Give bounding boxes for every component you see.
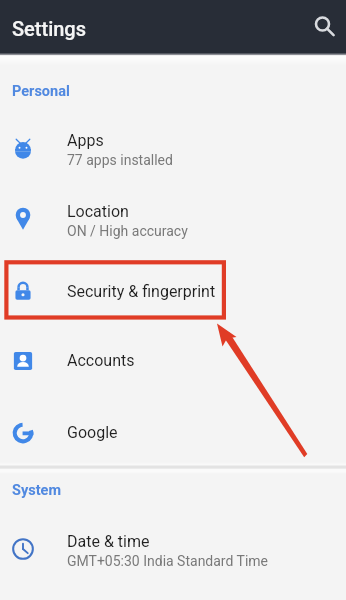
staticText: Location bbox=[67, 202, 129, 221]
staticText: Accounts bbox=[67, 351, 135, 370]
staticText: Apps bbox=[67, 131, 104, 150]
staticText: GMT+05:30 India Standard Time bbox=[67, 553, 269, 569]
staticText: System bbox=[12, 482, 61, 499]
staticText: Google bbox=[67, 423, 118, 442]
button[interactable]: Search bbox=[302, 5, 346, 49]
staticText: Security & fingerprint bbox=[67, 282, 216, 301]
button[interactable]: Date & time bbox=[0, 513, 346, 584]
staticText: Personal bbox=[12, 83, 70, 100]
staticText: Settings bbox=[12, 17, 87, 40]
button[interactable]: Accounts bbox=[0, 325, 346, 396]
button[interactable]: Location bbox=[0, 183, 346, 254]
button[interactable]: Apps bbox=[0, 112, 346, 183]
staticText: Date & time bbox=[67, 532, 150, 551]
staticText: ON / High accuracy bbox=[67, 223, 188, 239]
button[interactable]: Security & fingerprint bbox=[0, 256, 346, 327]
staticText: 77 apps installed bbox=[67, 152, 173, 168]
button[interactable]: Google bbox=[0, 397, 346, 468]
